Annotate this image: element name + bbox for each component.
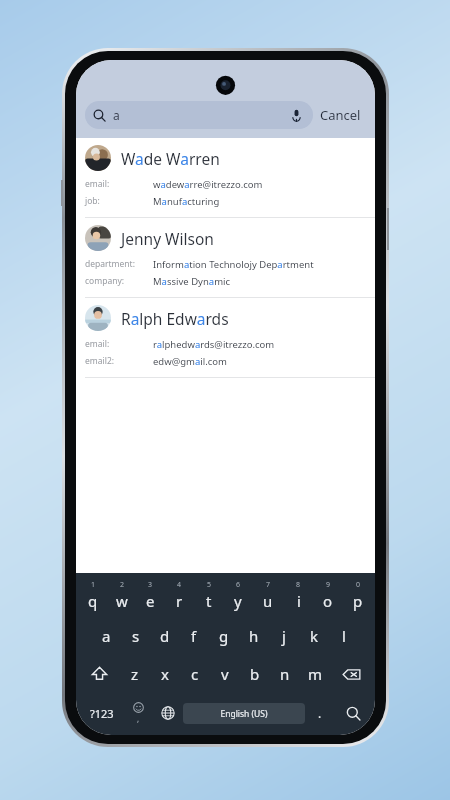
staticText: 6	[236, 580, 241, 590]
button[interactable]: a	[92, 617, 121, 655]
staticText: e	[146, 591, 155, 611]
staticText: 4	[177, 580, 182, 590]
button[interactable]: n	[270, 655, 300, 693]
button[interactable]: z	[120, 655, 150, 693]
staticText: edw@gmail.com	[153, 355, 227, 368]
staticText: t	[206, 591, 212, 611]
button[interactable]: Search	[335, 694, 371, 732]
staticText: u	[263, 591, 273, 611]
staticText: i	[297, 591, 301, 611]
staticText: k	[310, 626, 319, 646]
button[interactable]: l	[329, 617, 359, 655]
button[interactable]: Voice search	[287, 106, 305, 124]
staticText: Cancel	[320, 106, 361, 124]
button[interactable]: 0	[343, 573, 373, 617]
staticText: department:	[85, 258, 135, 270]
button[interactable]: Wade Warren	[76, 138, 375, 217]
button[interactable]: Shift	[79, 655, 120, 693]
staticText: wadewarre@itrezzo.com	[153, 178, 263, 191]
staticText: d	[160, 626, 170, 646]
staticText: job:	[85, 195, 100, 207]
button[interactable]: 5	[194, 573, 223, 617]
staticText: b	[250, 664, 260, 684]
staticText: x	[161, 664, 169, 684]
staticText: f	[191, 626, 197, 646]
staticText: o	[323, 591, 333, 611]
button[interactable]: s	[121, 617, 150, 655]
staticText: z	[131, 664, 139, 684]
staticText: 7	[266, 580, 271, 590]
staticText: w	[116, 591, 128, 611]
staticText: 5	[207, 580, 212, 590]
button[interactable]: Cancel	[313, 101, 368, 129]
button[interactable]: 2	[107, 573, 136, 617]
staticText: 9	[326, 580, 331, 590]
staticText: ?123	[90, 706, 114, 721]
button[interactable]: j	[269, 617, 299, 655]
button[interactable]: x	[150, 655, 180, 693]
staticText: Wade Warren	[121, 148, 220, 169]
button[interactable]: Backspace	[330, 655, 372, 693]
staticText: p	[353, 591, 363, 611]
staticText: email:	[85, 338, 110, 350]
staticText: 3	[148, 580, 153, 590]
button[interactable]: Change keyboard	[153, 694, 183, 732]
staticText: 1	[91, 580, 96, 590]
staticText: n	[280, 664, 290, 684]
staticText: .	[318, 705, 322, 721]
staticText: h	[249, 626, 259, 646]
button[interactable]: h	[239, 617, 269, 655]
button[interactable]: Jenny Wilson	[76, 218, 375, 297]
button[interactable]: a	[85, 101, 313, 129]
staticText: 2	[120, 580, 125, 590]
button[interactable]: d	[150, 617, 179, 655]
staticText: y	[234, 591, 242, 611]
button[interactable]: 8	[283, 573, 313, 617]
button[interactable]: 9	[313, 573, 343, 617]
staticText: ralphedwards@itrezzo.com	[153, 338, 275, 351]
staticText: a	[113, 107, 120, 123]
button[interactable]: g	[209, 617, 239, 655]
button[interactable]: Emoji	[123, 694, 153, 732]
button[interactable]: 1	[78, 573, 107, 617]
button[interactable]: f	[179, 617, 209, 655]
staticText: s	[132, 626, 140, 646]
button[interactable]: b	[240, 655, 270, 693]
staticText: Information Technolojy Department	[153, 258, 314, 271]
staticText: r	[176, 591, 183, 611]
button[interactable]: ?123	[80, 694, 123, 732]
staticText: v	[221, 664, 229, 684]
staticText: ,	[137, 713, 140, 724]
staticText: j	[282, 626, 286, 646]
staticText: English (US)	[220, 708, 268, 720]
staticText: Manufacturing	[153, 195, 220, 208]
staticText: 8	[296, 580, 301, 590]
staticText: 0	[356, 580, 361, 590]
button[interactable]: m	[300, 655, 330, 693]
button[interactable]: k	[299, 617, 329, 655]
staticText: q	[88, 591, 98, 611]
button[interactable]: 6	[223, 573, 253, 617]
button[interactable]: Ralph Edwards	[76, 298, 375, 377]
staticText: a	[102, 626, 111, 646]
staticText: email:	[85, 178, 110, 190]
staticText: g	[219, 626, 229, 646]
button[interactable]: 4	[165, 573, 194, 617]
staticText: l	[342, 626, 346, 646]
button[interactable]: 7	[253, 573, 283, 617]
staticText: company:	[85, 275, 125, 287]
staticText: m	[308, 664, 323, 684]
staticText: email2:	[85, 355, 115, 367]
staticText: Massive Dynamic	[153, 275, 231, 288]
staticText: Ralph Edwards	[121, 308, 229, 329]
button[interactable]: English (US)	[183, 703, 305, 724]
button[interactable]: v	[210, 655, 240, 693]
button[interactable]: .	[305, 694, 335, 732]
staticText: Jenny Wilson	[121, 228, 214, 249]
button[interactable]: c	[180, 655, 210, 693]
staticText: c	[191, 664, 199, 684]
button[interactable]: 3	[136, 573, 165, 617]
